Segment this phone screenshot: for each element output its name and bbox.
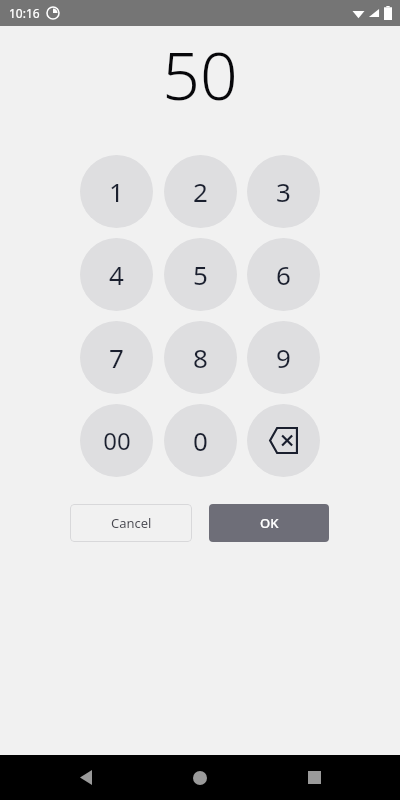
button[interactable]: 0 <box>164 404 237 477</box>
staticText: 1 <box>109 174 124 209</box>
staticText: 5 <box>193 257 208 292</box>
button[interactable]: 00 <box>80 404 153 477</box>
button[interactable]: 6 <box>247 238 320 311</box>
staticText: 8 <box>193 340 208 375</box>
button[interactable]: OK <box>209 504 329 542</box>
staticText: 7 <box>109 340 124 375</box>
staticText: 00 <box>103 424 131 457</box>
staticText: 2 <box>193 174 208 209</box>
button[interactable]: 8 <box>164 321 237 394</box>
button[interactable]: Recents <box>290 755 338 800</box>
staticText: 50 <box>162 29 238 119</box>
staticText: 6 <box>276 257 291 292</box>
button[interactable]: 7 <box>80 321 153 394</box>
button[interactable]: Cancel <box>70 504 192 542</box>
button[interactable]: Backspace <box>247 404 320 477</box>
staticText: OK <box>260 514 279 532</box>
staticText: 0 <box>193 423 208 458</box>
staticText: 4 <box>109 257 124 292</box>
button[interactable]: 3 <box>247 155 320 228</box>
button[interactable]: 5 <box>164 238 237 311</box>
button[interactable]: Home <box>176 755 224 800</box>
staticText: 10:16 <box>9 5 40 21</box>
staticText: 9 <box>276 340 291 375</box>
button[interactable]: 9 <box>247 321 320 394</box>
button[interactable]: 2 <box>164 155 237 228</box>
button[interactable]: Back <box>62 755 110 800</box>
button[interactable]: 4 <box>80 238 153 311</box>
button[interactable]: 1 <box>80 155 153 228</box>
staticText: Cancel <box>111 514 152 532</box>
staticText: 3 <box>276 174 291 209</box>
